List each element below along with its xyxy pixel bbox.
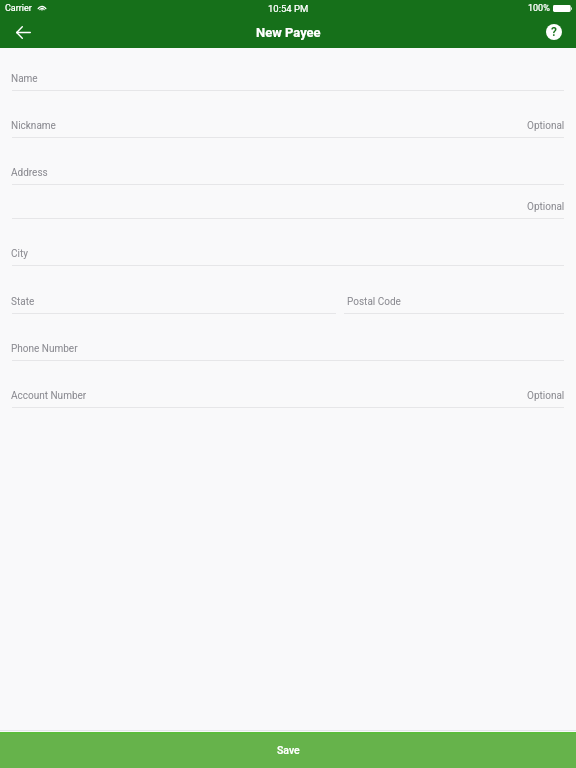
- staticText: Phone Number: [11, 343, 78, 355]
- button[interactable]: Address: [0, 138, 576, 185]
- staticText: 10:54 PM: [268, 3, 309, 14]
- button[interactable]: Help: [531, 16, 576, 48]
- button[interactable]: City: [0, 219, 576, 266]
- staticText: Account Number: [11, 390, 87, 402]
- button[interactable]: Phone Number: [0, 314, 576, 361]
- button[interactable]: Back: [0, 16, 46, 48]
- staticText: 100%: [528, 3, 550, 14]
- button[interactable]: Account Number: [0, 361, 576, 408]
- staticText: Optional: [527, 390, 565, 402]
- button[interactable]: Nickname: [0, 91, 576, 138]
- staticText: New Payee: [256, 25, 321, 40]
- staticText: State: [11, 296, 35, 308]
- staticText: Nickname: [11, 120, 56, 132]
- button[interactable]: Postal Code: [336, 266, 576, 314]
- button[interactable]: Name: [0, 48, 576, 91]
- staticText: Save: [277, 744, 300, 756]
- staticText: Optional: [527, 201, 565, 213]
- staticText: Address: [11, 167, 48, 179]
- staticText: ?: [551, 25, 557, 39]
- button[interactable]: Optional: [0, 185, 576, 219]
- staticText: Name: [11, 73, 38, 85]
- staticText: Optional: [527, 120, 565, 132]
- button[interactable]: Save: [0, 732, 576, 768]
- staticText: Carrier: [5, 3, 32, 14]
- button[interactable]: State: [0, 266, 336, 314]
- staticText: Postal Code: [347, 296, 401, 308]
- staticText: City: [11, 248, 28, 260]
